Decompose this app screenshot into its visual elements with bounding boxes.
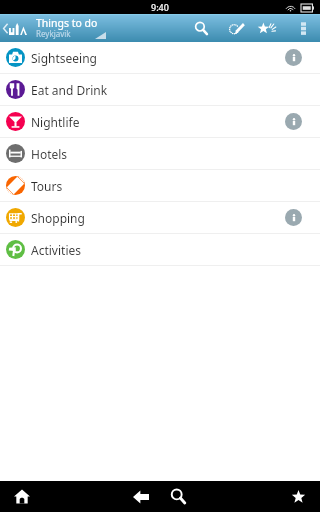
staticText: Tours bbox=[31, 178, 63, 194]
staticText: Activities bbox=[31, 242, 81, 258]
button[interactable]: Info about Shopping bbox=[285, 209, 302, 226]
button[interactable]: Back bbox=[0, 14, 34, 42]
button[interactable]: More options bbox=[292, 14, 314, 42]
button[interactable]: Search bbox=[163, 481, 193, 512]
staticText: Nightlife bbox=[31, 114, 80, 130]
button[interactable]: Back bbox=[126, 481, 156, 512]
button[interactable]: Edit route bbox=[221, 14, 252, 42]
button[interactable]: Sightseeing bbox=[0, 42, 320, 73]
button[interactable]: Info about Nightlife bbox=[285, 113, 302, 130]
staticText: Shopping bbox=[31, 210, 85, 226]
button[interactable]: Activities bbox=[0, 234, 320, 265]
staticText: Sightseeing bbox=[31, 50, 97, 66]
button[interactable]: Favourites bbox=[283, 481, 313, 512]
button[interactable]: Home bbox=[7, 481, 37, 512]
button[interactable]: Search bbox=[186, 14, 217, 42]
staticText: 9:40 bbox=[151, 1, 169, 13]
button[interactable]: Nightlife bbox=[0, 106, 320, 137]
staticText: Eat and Drink bbox=[31, 82, 108, 98]
button[interactable]: Info about Sightseeing bbox=[285, 49, 302, 66]
staticText: Reykjavik bbox=[36, 28, 71, 39]
button[interactable]: Shopping bbox=[0, 202, 320, 233]
staticText: Hotels bbox=[31, 146, 68, 162]
button[interactable]: Hotels bbox=[0, 138, 320, 169]
button[interactable]: Tours bbox=[0, 170, 320, 201]
button[interactable]: Eat and Drink bbox=[0, 74, 320, 105]
button[interactable]: Favourites bbox=[252, 14, 283, 42]
staticText: Things to do bbox=[36, 16, 98, 30]
